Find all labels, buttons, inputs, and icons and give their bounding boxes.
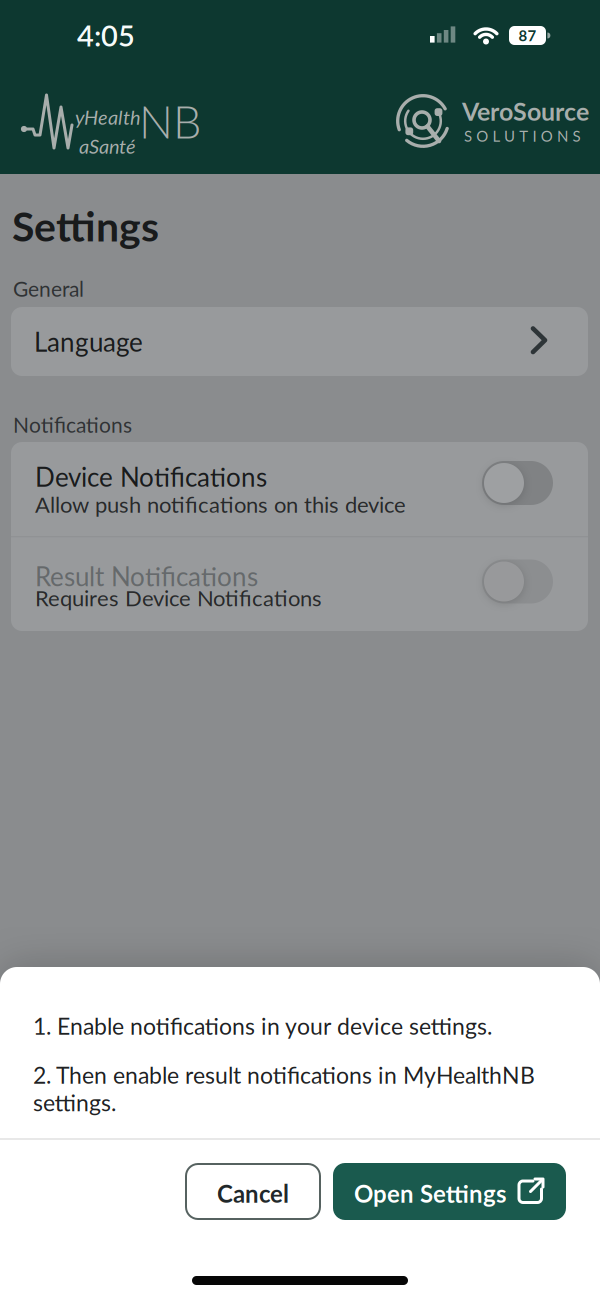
staticText: Result Notifications [35,560,258,592]
button[interactable]: Result Notifications [482,559,553,603]
staticText: 2. Then enable result notifications in M… [33,1061,535,1116]
staticText: Open Settings [354,1179,507,1208]
staticText: yHealth [75,105,141,129]
staticText: 4:05 [77,18,135,53]
staticText: aSanté [79,134,136,158]
staticText: 1. Enable notifications in your device s… [33,1012,492,1040]
button[interactable]: Open Settings [333,1163,566,1220]
staticText: SOLUTIONS [464,127,580,145]
button[interactable]: Language [11,307,588,376]
button[interactable]: Cancel [185,1163,321,1220]
staticText: Cancel [217,1179,289,1208]
staticText: VeroSource [462,96,589,126]
staticText: 87 [518,26,536,44]
staticText: NB [139,94,201,148]
staticText: General [13,276,84,301]
staticText: Device Notifications [35,461,267,492]
staticText: Notifications [13,412,132,437]
staticText: Allow push notifications on this device [35,491,406,517]
staticText: Language [34,326,143,357]
staticText: Requires Device Notifications [35,584,322,611]
button[interactable]: Device Notifications [482,461,553,505]
staticText: Settings [12,201,159,250]
